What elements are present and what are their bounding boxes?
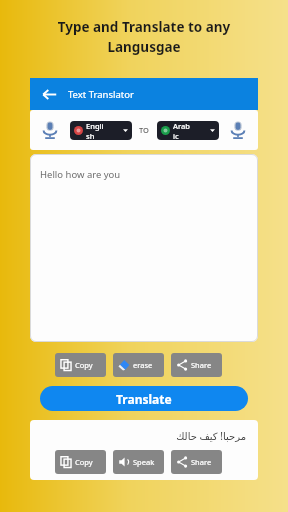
staticText: Hello how are you xyxy=(40,168,121,181)
button[interactable]: English xyxy=(70,121,132,140)
button[interactable]: Copy xyxy=(55,353,106,377)
staticText: Translate xyxy=(116,391,172,407)
staticText: TO xyxy=(139,125,149,135)
staticText: Copy xyxy=(75,457,93,467)
button[interactable]: Share xyxy=(171,450,222,474)
button[interactable]: Hello how are you xyxy=(30,154,258,342)
staticText: Arabic xyxy=(173,121,191,140)
button[interactable]: Speak target language xyxy=(226,118,250,142)
button[interactable]: Translate xyxy=(40,386,248,411)
button[interactable]: Share xyxy=(171,353,222,377)
staticText: Text Translator xyxy=(68,88,134,101)
staticText: Share xyxy=(191,457,212,467)
staticText: Type and Translate to any Langusgae xyxy=(26,18,262,56)
staticText: مرحبا! كيف حالك xyxy=(30,429,246,443)
button[interactable]: Arabic xyxy=(157,121,219,140)
button[interactable]: Speak xyxy=(113,450,164,474)
staticText: Speak xyxy=(133,457,155,467)
button[interactable]: Speak source language xyxy=(38,118,62,142)
staticText: erase xyxy=(133,360,153,370)
staticText: Share xyxy=(191,360,212,370)
button[interactable]: Back xyxy=(38,83,60,105)
button[interactable]: erase xyxy=(113,353,164,377)
staticText: English xyxy=(86,121,104,140)
button[interactable]: Copy xyxy=(55,450,106,474)
staticText: Copy xyxy=(75,360,93,370)
